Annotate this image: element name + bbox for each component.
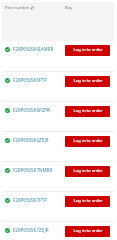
button[interactable]: Log in to order (65, 196, 110, 207)
staticText: Log in to order (73, 138, 103, 144)
staticText: F28P650SK7NMRR (13, 167, 53, 173)
button[interactable]: Log in to order (65, 106, 110, 117)
staticText: F28P650SK7PTP (13, 197, 48, 203)
button[interactable]: Part number (5, 5, 34, 11)
other: In stock (5, 78, 10, 83)
staticText: F28P650SK6IAMRR (13, 46, 54, 52)
button[interactable]: Log in to order (65, 136, 110, 147)
staticText: Log in to order (73, 168, 103, 174)
staticText: Log in to order (73, 228, 103, 234)
staticText: Buy (65, 5, 73, 11)
button[interactable]: In stock (0, 132, 117, 161)
other: In stock (5, 108, 10, 113)
staticText: F28P650SK6PZPR (13, 107, 50, 113)
button[interactable]: In stock (0, 102, 117, 131)
other: In stock (5, 228, 10, 233)
staticText: Log in to order (73, 78, 103, 84)
button[interactable]: Log in to order (65, 45, 110, 56)
button[interactable]: In stock (0, 41, 117, 71)
other: In stock (5, 198, 10, 203)
staticText: Part number (5, 5, 30, 11)
staticText: Log in to order (73, 47, 103, 53)
button[interactable]: In stock (0, 192, 117, 221)
staticText: Log in to order (73, 198, 103, 204)
button[interactable]: Log in to order (65, 166, 110, 177)
staticText: F28P650SK7ZEJR (13, 227, 49, 233)
button[interactable]: Log in to order (65, 226, 110, 237)
other: In stock (5, 138, 10, 143)
staticText: F28P650SK6PTP (13, 77, 48, 83)
other: In stock (5, 168, 10, 173)
button[interactable]: In stock (0, 222, 117, 240)
staticText: Log in to order (73, 108, 103, 114)
button[interactable]: Log in to order (65, 76, 110, 87)
other: Sort (31, 6, 34, 10)
button[interactable]: In stock (0, 72, 117, 101)
other: In stock (5, 47, 10, 52)
staticText: F28P650SK6ZEJR (13, 137, 49, 143)
button[interactable]: In stock (0, 162, 117, 191)
